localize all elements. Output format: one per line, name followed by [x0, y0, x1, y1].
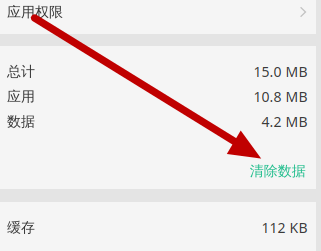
- staticText: 112 KB: [261, 218, 307, 237]
- staticText: 15.0 MB: [253, 62, 307, 81]
- button[interactable]: 清除数据: [0, 157, 316, 185]
- button[interactable]: 应用权限: [0, 0, 316, 34]
- staticText: 数据: [7, 113, 35, 130]
- staticText: 10.8 MB: [253, 87, 307, 106]
- staticText: 4.2 MB: [261, 112, 307, 131]
- staticText: 应用权限: [7, 3, 63, 21]
- staticText: 缓存: [7, 219, 35, 236]
- staticText: 总计: [7, 63, 35, 80]
- staticText: 清除数据: [250, 162, 306, 180]
- staticText: 应用: [7, 88, 35, 105]
